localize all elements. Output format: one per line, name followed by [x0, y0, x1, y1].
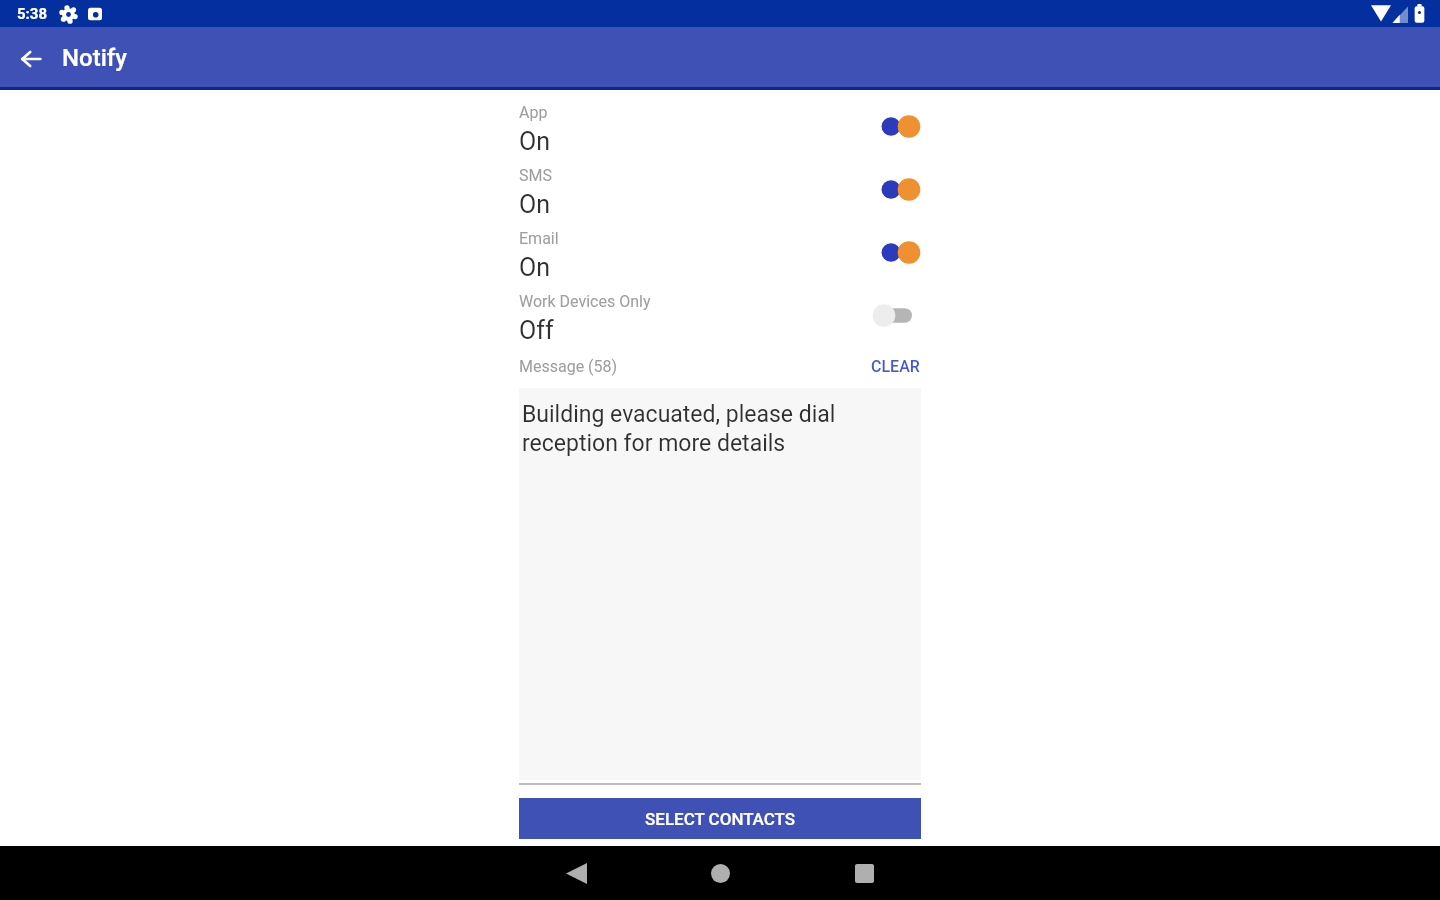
button[interactable]: Back [549, 846, 603, 900]
staticText: Off [519, 316, 554, 345]
staticText: On [519, 127, 551, 156]
staticText: App [519, 103, 548, 122]
staticText: SELECT CONTACTS [645, 809, 796, 829]
staticText: On [519, 190, 551, 219]
button[interactable]: App [519, 97, 921, 160]
staticText: Notify [62, 44, 128, 72]
button[interactable]: Home [693, 846, 747, 900]
button[interactable]: Recent apps [837, 846, 891, 900]
staticText: Message (58) [519, 357, 618, 376]
button[interactable]: SMS [519, 160, 921, 223]
staticText: SMS [519, 166, 552, 185]
staticText: Building evacuated, please dial receptio… [522, 401, 836, 457]
button[interactable]: SELECT CONTACTS [519, 798, 921, 839]
staticText: Work Devices Only [519, 292, 651, 311]
button[interactable]: Navigate up [0, 27, 62, 90]
button[interactable]: CLEAR [857, 353, 921, 379]
button[interactable]: Building evacuated, please dial receptio… [519, 388, 921, 780]
button[interactable]: Work Devices Only [519, 286, 921, 349]
staticText: CLEAR [871, 357, 920, 376]
staticText: Email [519, 229, 559, 248]
button[interactable]: Email [519, 223, 921, 286]
staticText: 5:38 [17, 5, 48, 23]
staticText: On [519, 253, 551, 282]
